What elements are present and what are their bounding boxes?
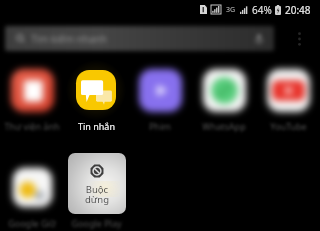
staticText: Thư viện ảnh [4, 120, 60, 132]
button[interactable] [0, 58, 64, 122]
staticText: Buộc dừng [85, 183, 109, 206]
staticText: Tin nhắn [78, 120, 115, 132]
staticText: Google Giữ [8, 217, 56, 229]
button[interactable] [0, 155, 64, 219]
staticText: Google Play [71, 217, 122, 229]
staticText: WhatsApp [202, 120, 246, 132]
staticText: 3G [226, 5, 236, 15]
button[interactable] [192, 58, 256, 122]
button[interactable]: Tìm kiếm nhanh [5, 26, 274, 51]
staticText: Phim [149, 120, 171, 132]
staticText: Tìm kiếm nhanh [31, 32, 107, 46]
button[interactable]: Buộc dừng [68, 153, 126, 214]
button[interactable] [64, 155, 128, 219]
button[interactable] [128, 58, 192, 122]
staticText: 20:48 [285, 3, 311, 17]
button[interactable] [256, 58, 320, 122]
button[interactable]: Voice search [253, 33, 265, 45]
staticText: YouTube [270, 120, 307, 132]
button[interactable] [64, 58, 128, 122]
button[interactable]: More options [288, 28, 310, 50]
staticText: 64% [252, 3, 272, 17]
